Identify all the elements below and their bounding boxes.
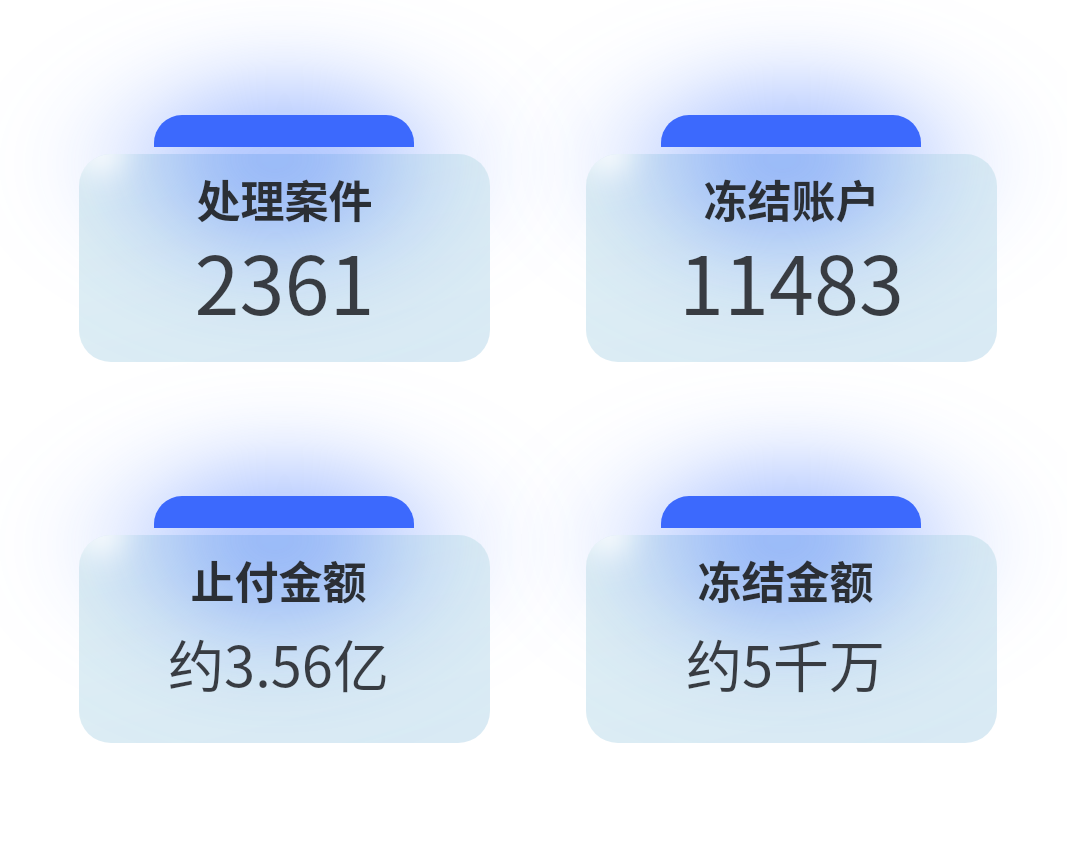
- button[interactable]: 冻结账户: [586, 115, 997, 362]
- staticText: 止付金额: [79, 548, 484, 612]
- button[interactable]: 冻结金额: [586, 496, 997, 743]
- button[interactable]: 处理案件: [79, 115, 490, 362]
- staticText: 冻结账户: [586, 167, 997, 231]
- staticText: 冻结金额: [586, 548, 991, 612]
- staticText: 11483: [586, 221, 997, 338]
- staticText: 处理案件: [79, 167, 490, 231]
- staticText: 2361: [79, 221, 490, 338]
- staticText: 约5千万: [586, 622, 991, 703]
- staticText: 约3.56亿: [79, 622, 484, 703]
- button[interactable]: 止付金额: [79, 496, 490, 743]
